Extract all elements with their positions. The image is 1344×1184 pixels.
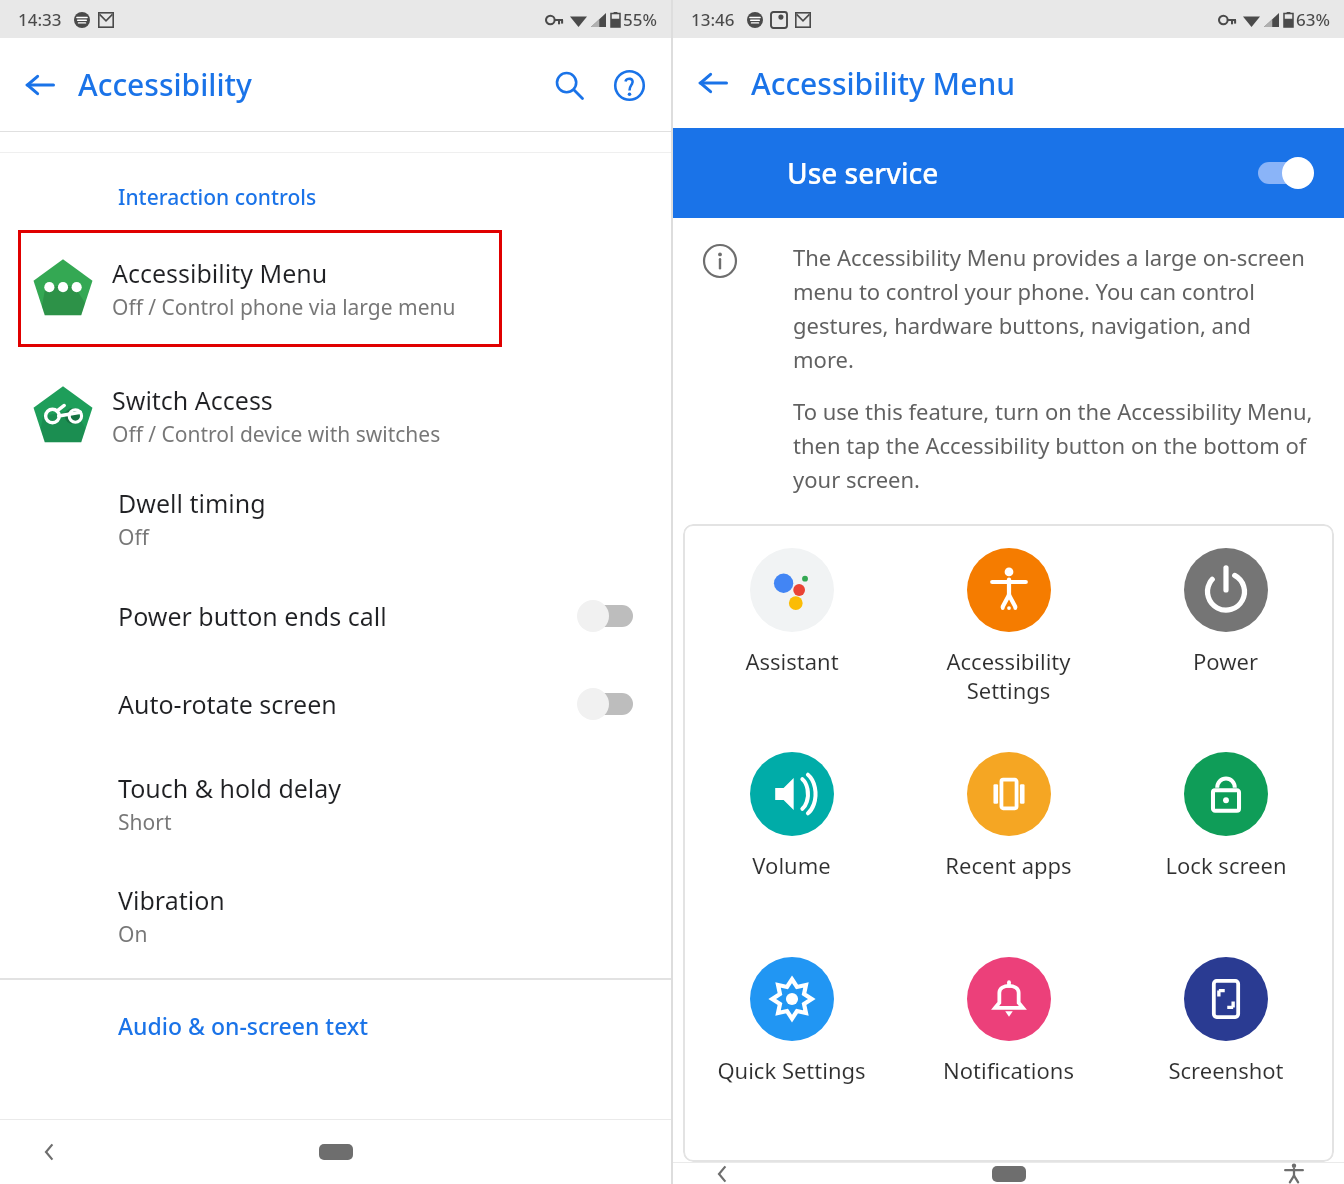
staticText: Switch Access	[112, 383, 273, 417]
staticText: The Accessibility Menu provides a large …	[793, 242, 1314, 374]
staticText: Screenshot	[1168, 1055, 1284, 1085]
staticText: Accessibility Menu	[751, 63, 1015, 104]
button[interactable]	[577, 597, 635, 635]
button[interactable]: Use service	[673, 128, 1344, 218]
staticText: Vibration	[118, 883, 225, 917]
button[interactable]: Search	[539, 55, 599, 115]
staticText: Off / Control phone via large menu	[112, 293, 456, 322]
staticText: Off	[118, 523, 149, 552]
button[interactable]: Assistant	[683, 548, 900, 752]
button[interactable]: Notifications	[900, 957, 1117, 1162]
button[interactable]: Dwell timing	[0, 466, 671, 572]
button[interactable]: Back	[0, 1120, 100, 1184]
staticText: Short	[118, 808, 172, 837]
staticText: Dwell timing	[118, 486, 266, 520]
staticText: 55%	[623, 8, 657, 31]
staticText: Volume	[752, 850, 831, 880]
button[interactable]	[1256, 154, 1314, 192]
button[interactable]: Back	[681, 51, 745, 115]
staticText: Lock screen	[1165, 850, 1287, 880]
staticText: Recent apps	[945, 850, 1072, 880]
button[interactable]: Audio & on-screen text	[118, 1010, 369, 1041]
button[interactable]: Screenshot	[1117, 957, 1334, 1162]
staticText: Accessibility Menu	[112, 256, 328, 290]
staticText: Interaction controls	[118, 183, 317, 212]
button[interactable]: Back	[8, 53, 72, 117]
staticText: 13:46	[691, 8, 735, 31]
button[interactable]: Auto-rotate screen	[0, 660, 671, 748]
button[interactable]: Switch Access	[0, 366, 671, 466]
staticText: Auto-rotate screen	[118, 687, 337, 721]
staticText: Use service	[787, 154, 939, 192]
staticText: 14:33	[18, 8, 62, 31]
staticText: Quick Settings	[717, 1055, 866, 1085]
button[interactable]: Accessibility Menu	[18, 230, 502, 347]
button[interactable]: Recent apps	[900, 752, 1117, 957]
button[interactable]: Help	[599, 55, 659, 115]
button[interactable]: Power	[1117, 548, 1334, 752]
staticText: Accessibility Settings	[946, 646, 1071, 705]
button[interactable]: Accessibility	[1244, 1163, 1344, 1184]
staticText: Power	[1193, 646, 1258, 676]
staticText: To use this feature, turn on the Accessi…	[793, 396, 1314, 494]
staticText: Notifications	[943, 1055, 1074, 1085]
button[interactable]: Back	[673, 1163, 773, 1184]
staticText: 63%	[1296, 8, 1330, 31]
staticText: Off / Control device with switches	[112, 420, 441, 449]
button[interactable]: Home	[286, 1127, 386, 1177]
button[interactable]	[577, 685, 635, 723]
button[interactable]: Volume	[683, 752, 900, 957]
button[interactable]: Lock screen	[1117, 752, 1334, 957]
button[interactable]: Accessibility Settings	[900, 548, 1117, 752]
staticText: Accessibility	[78, 64, 252, 105]
button[interactable]: Touch & hold delay	[0, 748, 671, 860]
staticText: Power button ends call	[118, 599, 387, 633]
staticText: On	[118, 920, 148, 949]
button[interactable]: Power button ends call	[0, 572, 671, 660]
button[interactable]: Home	[959, 1163, 1059, 1184]
button[interactable]: Quick Settings	[683, 957, 900, 1162]
staticText: Assistant	[745, 646, 839, 676]
button[interactable]: Vibration	[0, 860, 671, 972]
staticText: Touch & hold delay	[118, 771, 342, 805]
